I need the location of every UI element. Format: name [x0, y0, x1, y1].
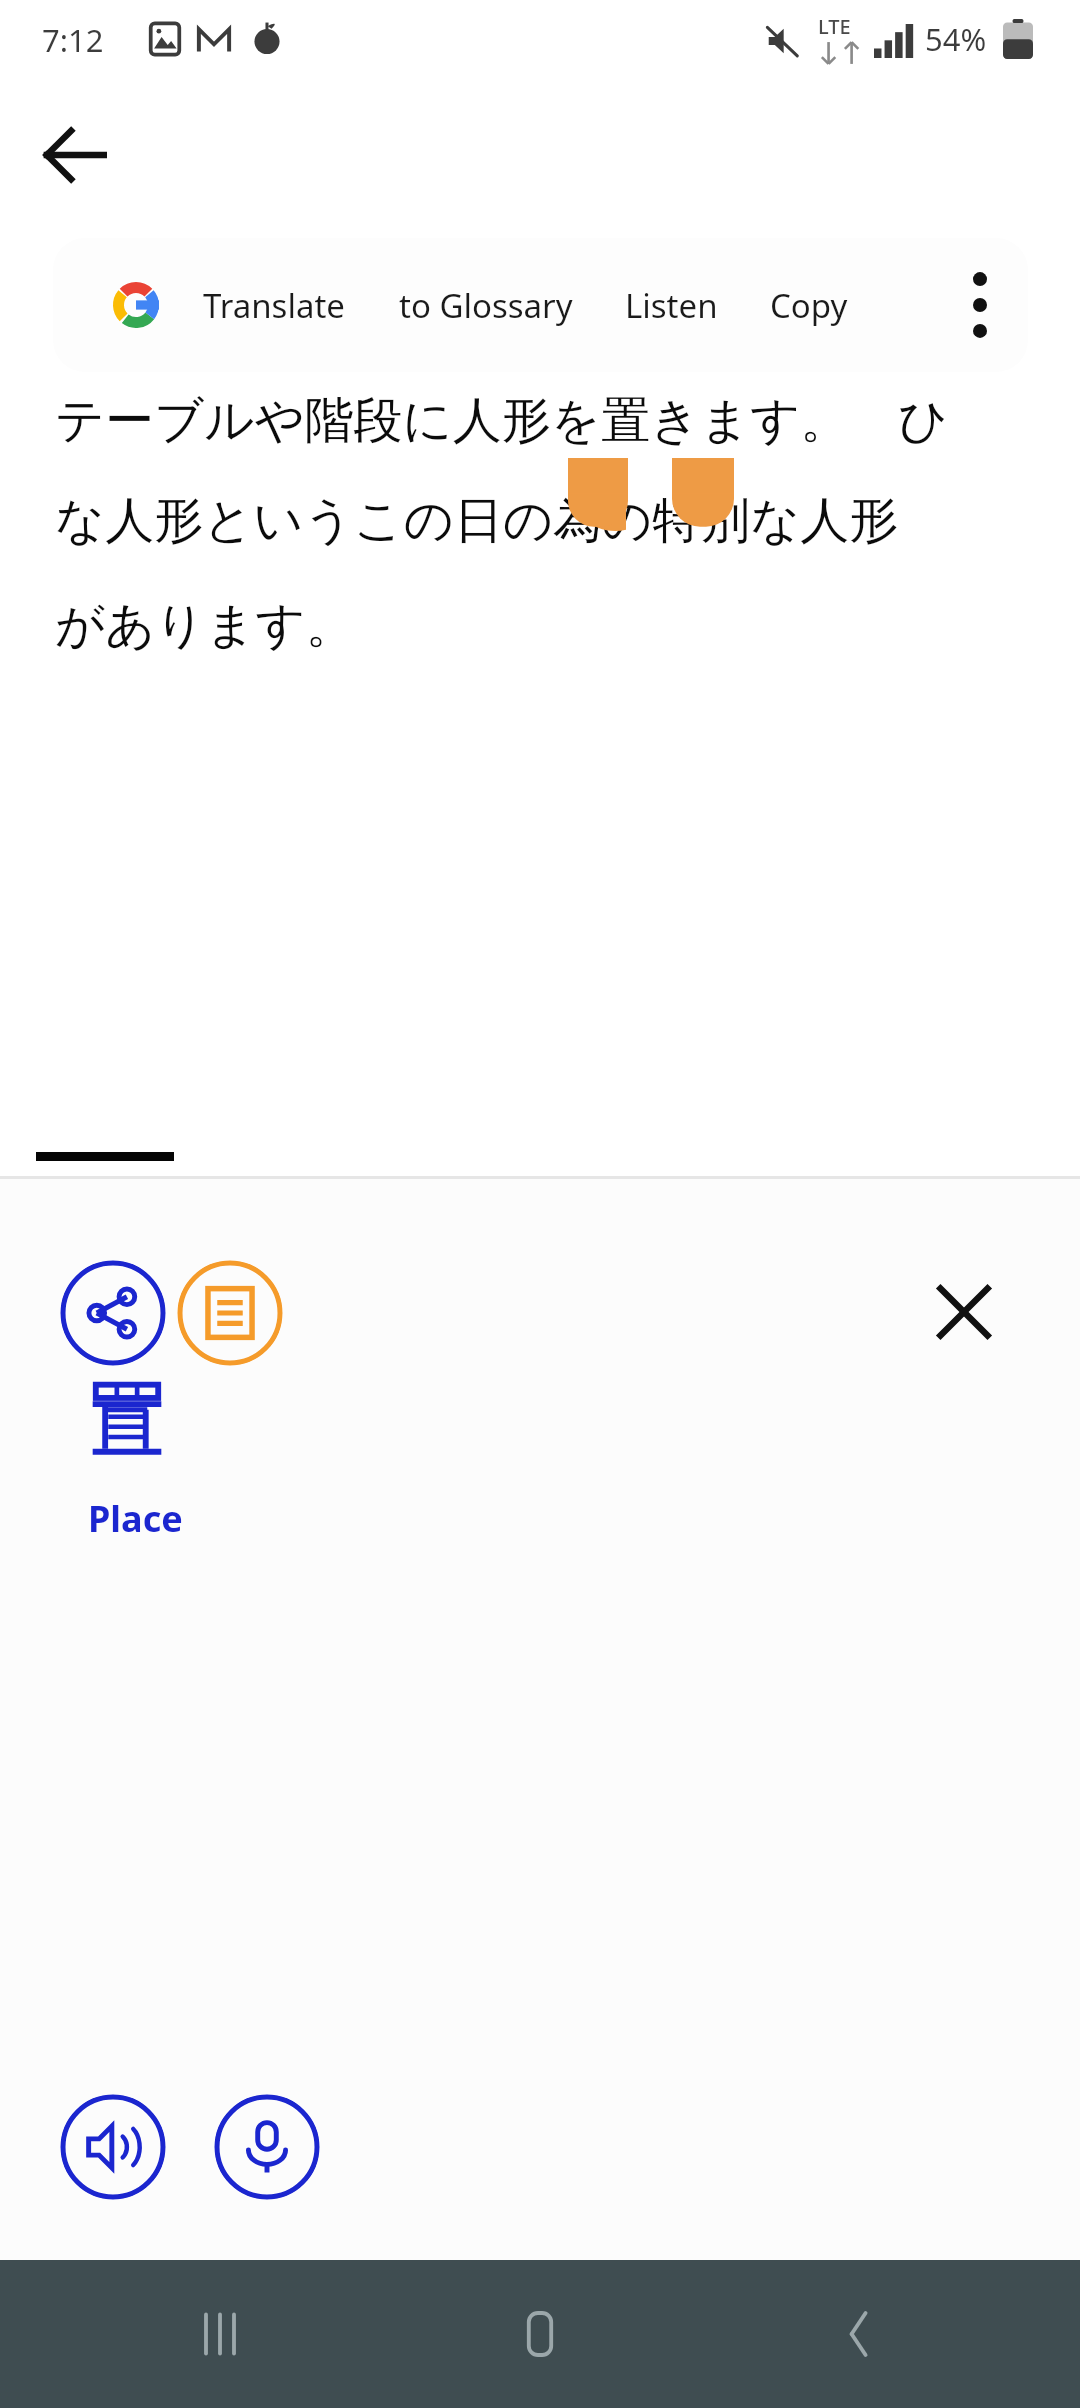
staticText: 7:12 [42, 19, 104, 61]
button[interactable]: Recent apps [120, 2260, 320, 2408]
staticText: テーブルや階段に人形を置きます。 ひ [55, 385, 949, 452]
button[interactable]: Copy [766, 269, 852, 342]
button[interactable]: Speak [214, 2094, 320, 2200]
button[interactable]: Home [440, 2260, 640, 2408]
button[interactable]: Back [20, 100, 130, 210]
staticText: Place [88, 1494, 183, 1543]
button[interactable]: Listen [60, 2094, 166, 2200]
button[interactable]: to Glossary [395, 269, 577, 342]
button[interactable]: Share [60, 1260, 166, 1366]
staticText: Listen [625, 283, 718, 328]
button[interactable]: More options [932, 238, 1028, 372]
button[interactable]: Translate [199, 269, 349, 342]
button[interactable]: Back [760, 2260, 960, 2408]
staticText: LTE [818, 13, 851, 40]
button[interactable]: Close [900, 1248, 1028, 1376]
staticText: 54% [925, 18, 987, 60]
button[interactable]: Dictionary entry [177, 1260, 283, 1366]
button[interactable]: Place [52, 1380, 242, 1543]
button[interactable]: Listen [621, 269, 722, 342]
staticText: Copy [770, 283, 848, 328]
staticText: Translate [203, 283, 345, 328]
staticText: があります。 [55, 595, 355, 657]
staticText: to Glossary [399, 283, 573, 328]
staticText: な人形というこの日の為の特別な人形 [55, 490, 899, 552]
